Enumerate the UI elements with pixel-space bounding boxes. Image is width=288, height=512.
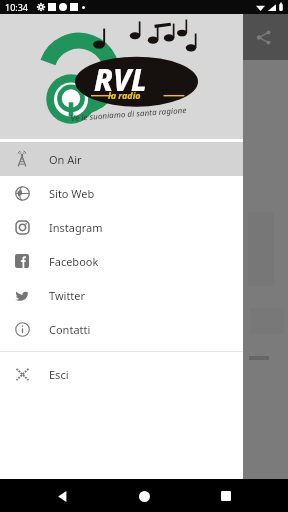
staticText: Twitter	[49, 288, 86, 303]
staticText: Instagram	[49, 220, 103, 235]
button[interactable]: Instagram	[0, 210, 243, 244]
button[interactable]: Sito Web	[0, 176, 243, 210]
staticText: Facebook	[49, 254, 99, 269]
button[interactable]: Facebook	[0, 244, 243, 278]
staticText: la radio	[108, 89, 141, 101]
button[interactable]: Esci	[0, 357, 243, 391]
staticText: RVL	[94, 59, 147, 100]
button[interactable]: Contatti	[0, 312, 243, 346]
button[interactable]: Home	[130, 482, 158, 510]
button[interactable]: Back	[48, 482, 76, 510]
staticText: 10:34	[5, 1, 29, 13]
staticText: On Air	[49, 152, 82, 167]
staticText: Esci	[49, 367, 69, 382]
button[interactable]: Share	[246, 20, 280, 54]
staticText: Ve le suoniamo di santa ragione	[70, 104, 187, 123]
staticText: Contatti	[49, 322, 91, 337]
button[interactable]: Recent apps	[212, 482, 240, 510]
button[interactable]: On Air	[0, 142, 243, 176]
button[interactable]: Twitter	[0, 278, 243, 312]
staticText: Sito Web	[49, 186, 95, 201]
